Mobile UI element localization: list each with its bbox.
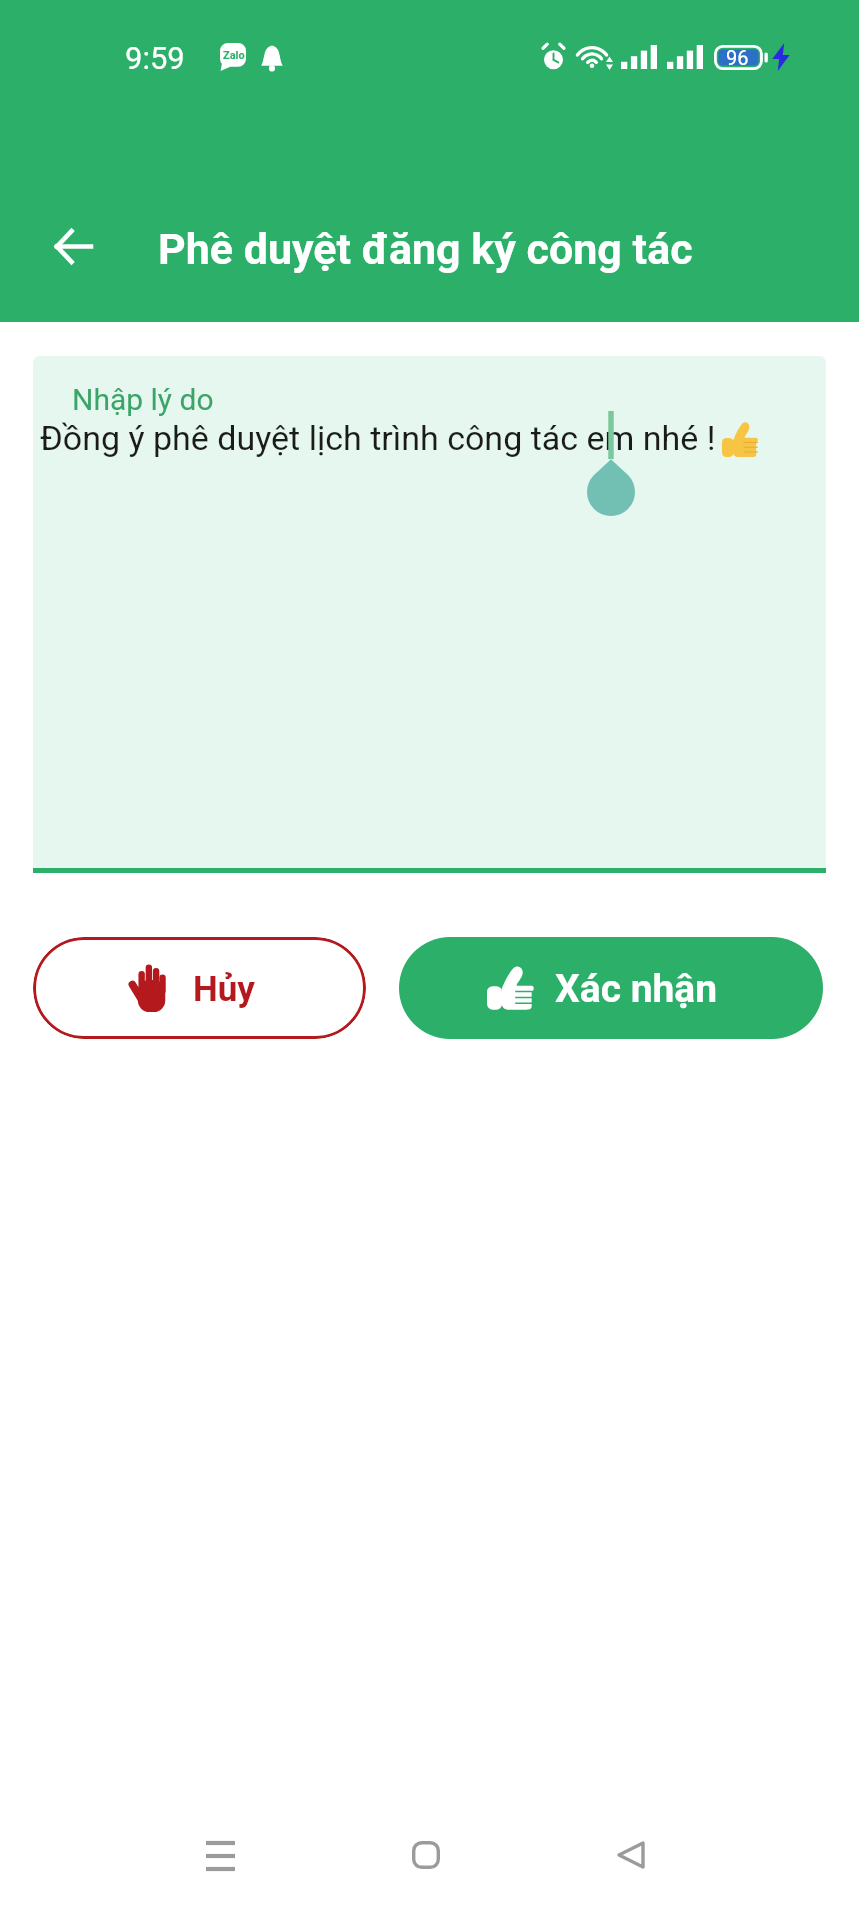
button[interactable]: Nhập lý do — [33, 356, 826, 868]
staticText: Xác nhận — [555, 966, 718, 1012]
staticText: 9:59 — [125, 40, 185, 77]
staticText: 96 — [726, 46, 749, 70]
staticText: Phê duyệt đăng ký công tác — [158, 224, 693, 275]
button[interactable]: Hủy — [33, 937, 366, 1039]
button[interactable]: Back — [586, 1810, 675, 1899]
button[interactable]: Xác nhận — [399, 937, 823, 1039]
staticText: Zalo — [223, 49, 245, 62]
staticText: Đồng ý phê duyệt lịch trình công tác em … — [40, 418, 716, 458]
staticText: Nhập lý do — [72, 382, 214, 417]
button[interactable]: Back — [35, 208, 111, 284]
button[interactable]: Home — [381, 1810, 470, 1899]
staticText: Hủy — [193, 968, 255, 1009]
button[interactable]: Recent apps — [176, 1810, 265, 1899]
